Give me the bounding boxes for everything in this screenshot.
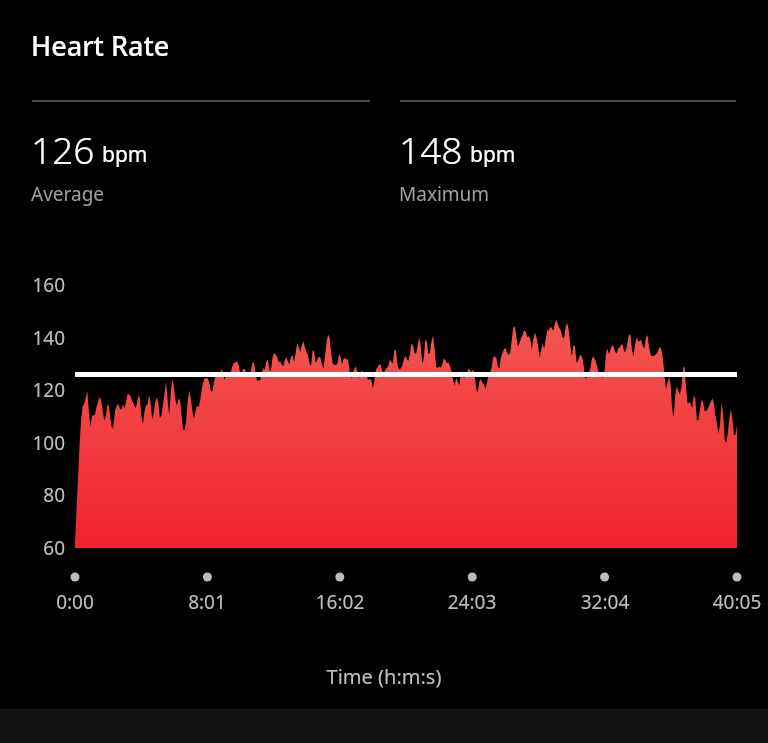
staticText: 8:01 (147, 589, 267, 615)
button[interactable]: Heart rate over time chart (0, 0, 768, 743)
staticText: Heart Rate (31, 27, 170, 64)
staticText: Average (31, 181, 105, 207)
staticText: 16:02 (280, 589, 400, 615)
staticText: 126 (31, 124, 95, 174)
staticText: 40:05 (677, 589, 768, 615)
staticText: Maximum (399, 181, 490, 207)
button[interactable]: 148 (399, 124, 509, 200)
staticText: bpm (470, 140, 516, 169)
staticText: 120 (0, 377, 65, 403)
staticText: 80 (0, 482, 65, 508)
staticText: 140 (0, 325, 65, 351)
staticText: 60 (0, 535, 65, 561)
staticText: 0:00 (15, 589, 135, 615)
staticText: 24:03 (412, 589, 532, 615)
staticText: 148 (399, 124, 463, 174)
staticText: Time (h:m:s) (0, 663, 768, 690)
staticText: 32:04 (545, 589, 665, 615)
staticText: 160 (0, 272, 65, 298)
button[interactable]: 126 (31, 124, 141, 200)
staticText: bpm (102, 140, 148, 169)
staticText: 100 (0, 430, 65, 456)
